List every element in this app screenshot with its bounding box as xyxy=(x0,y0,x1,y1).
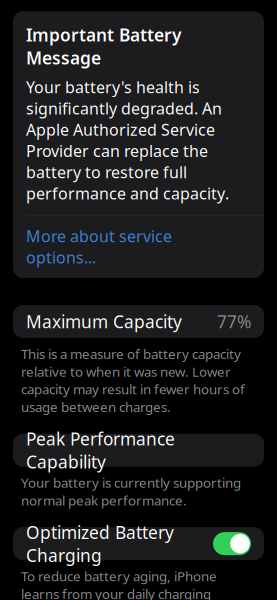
staticText: 77% xyxy=(217,310,251,333)
button[interactable]: Optimized Battery Charging xyxy=(13,527,264,560)
staticText: Your battery's health is significantly d… xyxy=(26,76,229,204)
staticText: Your battery is currently supporting nor… xyxy=(21,474,241,509)
button[interactable]: Maximum Capacity xyxy=(13,305,264,338)
staticText: Peak Performance Capability xyxy=(26,427,175,473)
staticText: Important Battery Message xyxy=(26,23,181,69)
staticText: Optimized Battery Charging xyxy=(26,521,174,567)
staticText: More about service options... xyxy=(26,225,172,268)
staticText: Maximum Capacity xyxy=(26,310,182,333)
staticText: To reduce battery aging, iPhone learns f… xyxy=(21,567,240,600)
staticText: This is a measure of battery capacity re… xyxy=(21,345,245,416)
button[interactable]: More about service options... xyxy=(13,215,264,278)
